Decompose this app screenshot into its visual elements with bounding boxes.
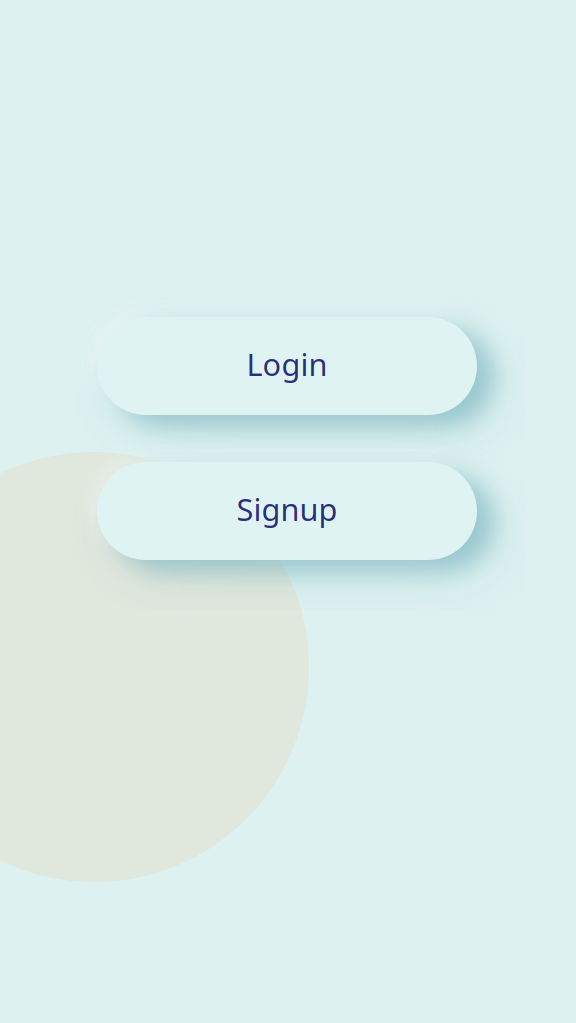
button[interactable]: Signup [97, 462, 477, 560]
button[interactable]: Login [97, 317, 477, 415]
staticText: Signup [236, 489, 337, 529]
staticText: Login [246, 344, 327, 384]
